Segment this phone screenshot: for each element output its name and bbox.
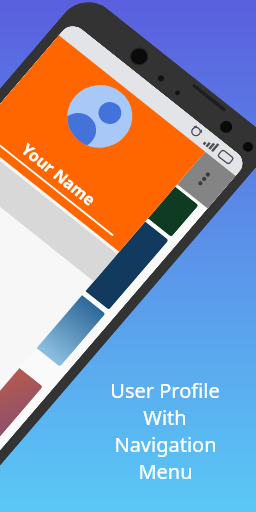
button[interactable]: More options xyxy=(179,155,229,203)
staticText: Navigation xyxy=(114,431,217,458)
staticText: Menu xyxy=(138,458,193,485)
button[interactable]: Settings xyxy=(0,207,49,376)
button[interactable] xyxy=(0,170,110,381)
staticText: Motii xyxy=(83,137,124,176)
button[interactable]: Open navigation menu xyxy=(43,47,87,89)
staticText: User Profile xyxy=(110,377,220,404)
staticText: With xyxy=(143,404,187,431)
button[interactable]: Motii xyxy=(6,61,201,251)
button[interactable]: Profile xyxy=(0,152,96,322)
staticText: Your Name xyxy=(15,132,102,216)
button[interactable] xyxy=(0,96,175,324)
button[interactable]: Messages xyxy=(0,179,73,349)
button[interactable]: Home xyxy=(0,125,120,294)
staticText: Profile xyxy=(0,195,2,235)
staticText: Home xyxy=(0,151,6,192)
button[interactable] xyxy=(0,243,50,484)
